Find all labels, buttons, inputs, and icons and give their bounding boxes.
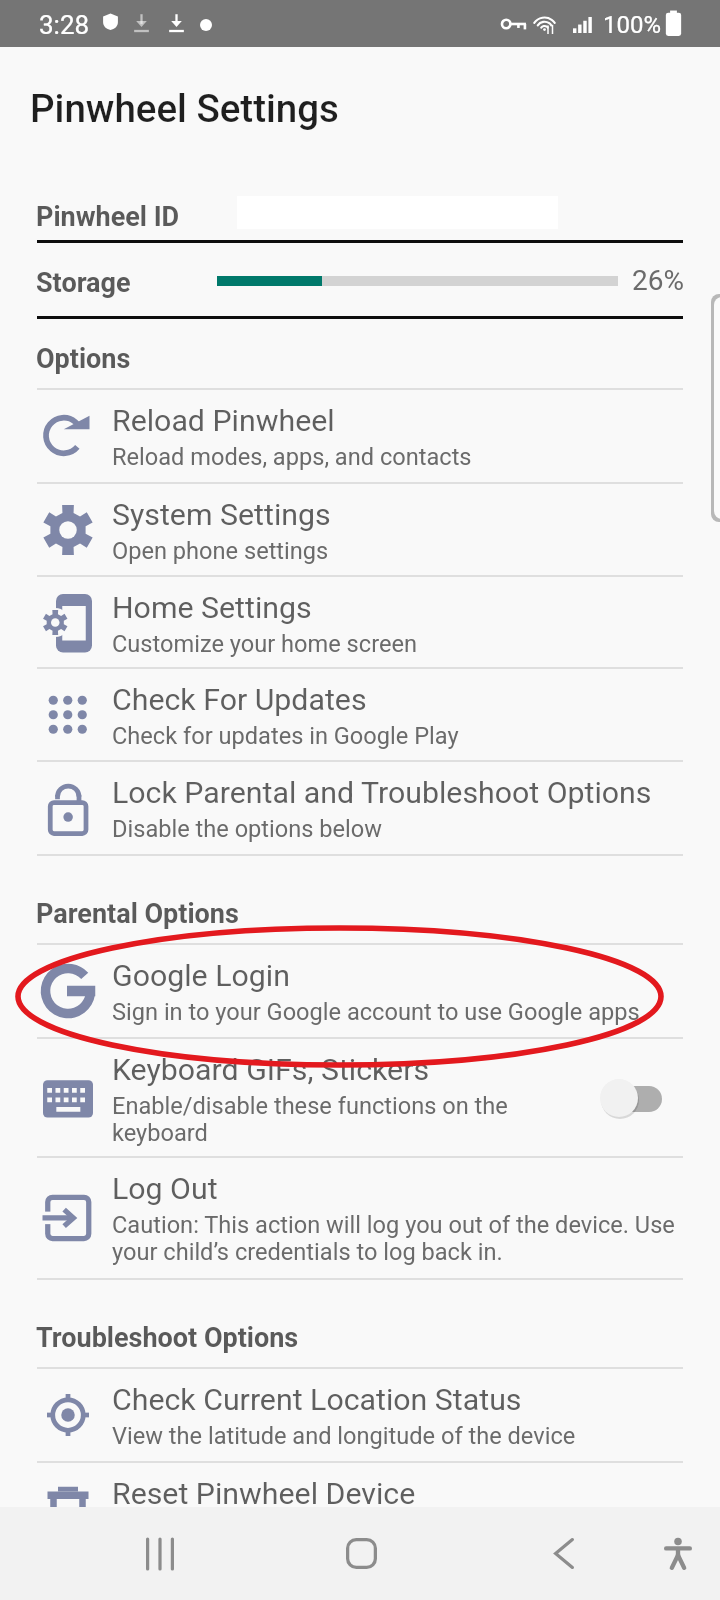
staticText: View the latitude and longitude of the d… [112, 1422, 576, 1450]
staticText: your child’s credentials to log back in. [112, 1238, 503, 1266]
button[interactable]: Google Login [0, 944, 720, 1038]
button[interactable]: Accessibility [628, 1507, 720, 1600]
staticText: Check Current Location Status [112, 1382, 522, 1418]
staticText: Parental Options [36, 898, 239, 930]
button[interactable]: Lock Parental and Troubleshoot Options [0, 761, 720, 855]
staticText: Pinwheel ID [36, 201, 180, 233]
staticText: Caution: This action will log you out of… [112, 1211, 675, 1239]
staticText: Check For Updates [112, 682, 367, 718]
button[interactable]: Home Settings [0, 576, 720, 668]
staticText: Storage [36, 267, 131, 299]
staticText: Keyboard GIFs, Stickers [112, 1052, 430, 1088]
button[interactable]: Check For Updates [0, 668, 720, 761]
staticText: keyboard [112, 1119, 208, 1147]
staticText: Open phone settings [112, 537, 329, 565]
button[interactable]: Reload Pinwheel [0, 389, 720, 483]
staticText: Customize your home screen [112, 630, 417, 658]
button[interactable]: Recent apps [110, 1507, 210, 1600]
staticText: Google Login [112, 958, 290, 994]
staticText: 100% [603, 11, 662, 39]
staticText: Log Out [112, 1171, 218, 1207]
staticText: Home Settings [112, 590, 312, 626]
staticText: 3:28 [39, 10, 90, 40]
staticText: Sign in to your Google account to use Go… [112, 998, 640, 1026]
button[interactable]: Check Current Location Status [0, 1368, 720, 1462]
button[interactable]: Home [311, 1507, 411, 1600]
staticText: Options [36, 343, 131, 375]
staticText: System Settings [112, 497, 331, 533]
button[interactable]: Toggle keyboard GIFs and stickers [600, 1079, 662, 1119]
button[interactable]: Keyboard GIFs, Stickers [0, 1038, 720, 1157]
button[interactable]: System Settings [0, 483, 720, 576]
button[interactable]: Log Out [0, 1157, 720, 1279]
button[interactable]: Reset Pinwheel Device [0, 1462, 720, 1556]
staticText: Disable the options below [112, 815, 383, 843]
staticText: 26% [632, 264, 684, 297]
staticText: Lock Parental and Troubleshoot Options [112, 775, 652, 811]
staticText: Reload Pinwheel [112, 403, 335, 439]
staticText: Check for updates in Google Play [112, 722, 459, 750]
staticText: Troubleshoot Options [36, 1322, 299, 1354]
button[interactable]: Back [514, 1507, 614, 1600]
staticText: Enable/disable these functions on the [112, 1092, 508, 1120]
staticText: Pinwheel Settings [30, 86, 339, 131]
staticText: Reset Pinwheel Device [112, 1476, 416, 1512]
staticText: Reload modes, apps, and contacts [112, 443, 472, 471]
